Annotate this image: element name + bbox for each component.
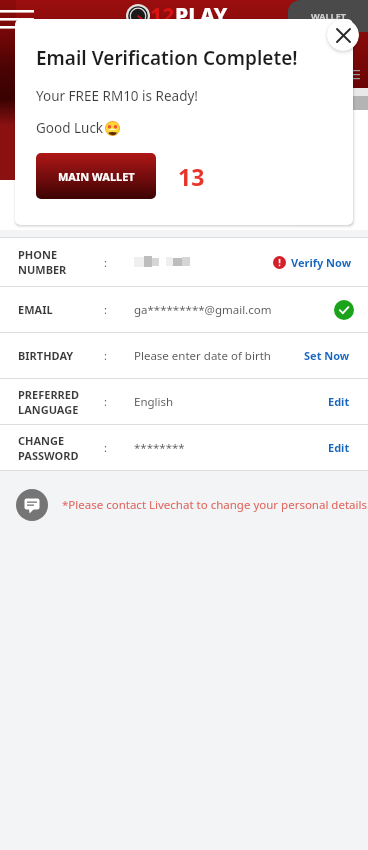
staticText: 13 [178, 161, 205, 192]
staticText: : [104, 348, 107, 363]
staticText: 12 [150, 1, 175, 30]
staticText: PHONE NUMBER [18, 247, 67, 277]
button[interactable]: Verify Now [271, 253, 354, 272]
staticText: EMAIL [18, 302, 53, 317]
staticText: Verify Now [291, 255, 352, 270]
staticText: Email Verification Complete! [36, 45, 298, 71]
staticText: Please enter date of birth [134, 348, 271, 364]
staticText: *Please contact Livechat to change your … [62, 497, 368, 513]
other: Livechat [16, 489, 48, 521]
button[interactable]: Livechat [14, 485, 368, 525]
button[interactable]: Edit [324, 390, 354, 413]
staticText: English [134, 394, 174, 410]
staticText: PREFERRED LANGUAGE [18, 387, 80, 417]
staticText: ******** [134, 440, 185, 456]
button[interactable]: PREFERRED LANGUAGE [0, 379, 368, 424]
staticText: BIRTHDAY [18, 348, 74, 363]
button[interactable]: PHONE NUMBER [0, 238, 368, 286]
staticText: Your FREE RM10 is Ready! [36, 87, 198, 105]
staticText: : [104, 394, 107, 409]
button[interactable]: Edit [324, 436, 354, 459]
staticText: Edit [328, 394, 350, 409]
staticText: : [104, 302, 107, 317]
staticText: Good Luck [36, 119, 104, 137]
staticText: : [104, 255, 107, 270]
other: Verified [334, 300, 354, 320]
staticText: Set Now [304, 348, 350, 363]
staticText: Edit [328, 440, 350, 455]
staticText: ga*********@gmail.com [134, 302, 272, 318]
staticText: : [104, 440, 107, 455]
button[interactable]: MAIN WALLET [36, 153, 156, 199]
staticText: MAIN WALLET [58, 169, 135, 184]
other: Menu [0, 8, 40, 30]
staticText: PLAY [175, 1, 228, 30]
staticText: CHANGE PASSWORD [18, 433, 79, 463]
button[interactable]: WALLET [288, 0, 368, 32]
button[interactable]: BIRTHDAY [0, 333, 368, 378]
button[interactable]: Close [327, 19, 359, 51]
staticText: WALLET [311, 10, 346, 22]
button[interactable]: EMAIL [0, 287, 368, 332]
button[interactable]: Set Now [300, 344, 354, 367]
button[interactable]: CHANGE PASSWORD [0, 425, 368, 470]
